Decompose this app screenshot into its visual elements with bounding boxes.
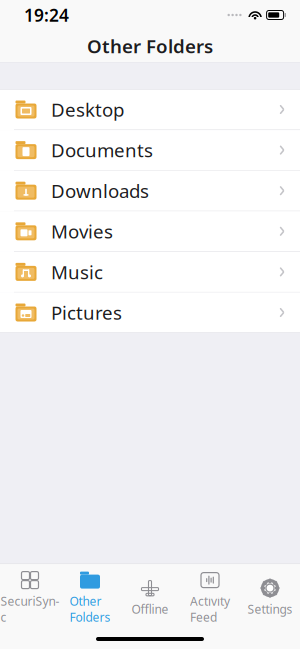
staticText: SecuriSync (0, 593, 59, 625)
staticText: Offline (131, 601, 168, 617)
staticText: Other Folders (69, 593, 110, 625)
button[interactable]: Activity Feed (180, 564, 240, 629)
staticText: Pictures (51, 300, 122, 325)
button[interactable]: Movies (0, 211, 300, 252)
staticText: Movies (51, 219, 113, 244)
button[interactable]: Desktop (0, 89, 300, 130)
button[interactable]: Music (0, 252, 300, 292)
staticText: Other Folders (87, 34, 213, 58)
button[interactable]: Downloads (0, 171, 300, 211)
staticText: Settings (247, 601, 292, 617)
button[interactable]: Other Folders (60, 564, 120, 629)
button[interactable]: SecuriSync (0, 564, 60, 629)
staticText: Desktop (51, 97, 124, 122)
staticText: Downloads (51, 178, 149, 203)
button[interactable]: Documents (0, 130, 300, 171)
button[interactable]: Settings (240, 572, 300, 621)
staticText: 19:24 (24, 3, 69, 26)
staticText: Activity Feed (190, 593, 230, 625)
button[interactable]: Pictures (0, 292, 300, 332)
button[interactable]: Offline (120, 572, 180, 621)
staticText: Music (51, 259, 103, 284)
staticText: Documents (51, 138, 153, 162)
